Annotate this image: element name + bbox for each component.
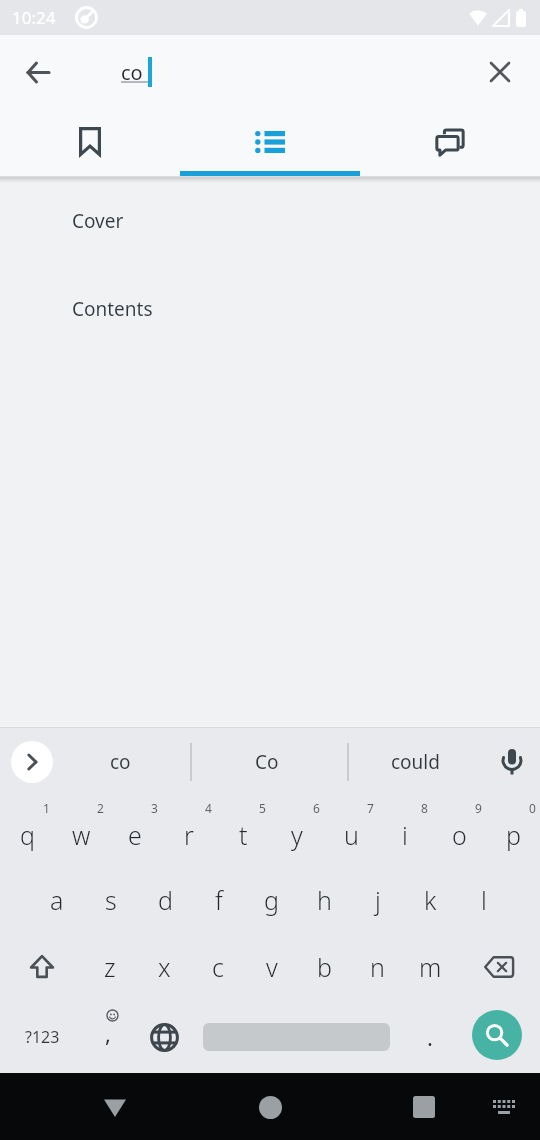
button[interactable]: x — [137, 933, 191, 1001]
staticText: b — [317, 950, 332, 984]
staticText: 6 — [313, 800, 320, 816]
button[interactable]: h — [298, 866, 351, 933]
button[interactable]: l — [457, 866, 510, 933]
staticText: y — [291, 818, 303, 852]
button[interactable]: Co — [192, 732, 342, 792]
staticText: e — [128, 818, 142, 852]
button[interactable] — [478, 50, 522, 94]
button[interactable]: Contents — [0, 265, 540, 353]
button[interactable] — [457, 933, 540, 1001]
button[interactable]: q — [0, 796, 54, 866]
staticText: i — [402, 818, 408, 852]
staticText: n — [370, 950, 385, 984]
staticText: 4 — [205, 800, 212, 816]
staticText: 8 — [421, 800, 428, 816]
staticText: , — [105, 1018, 111, 1048]
staticText: 7 — [367, 800, 374, 816]
button[interactable] — [88, 1080, 142, 1134]
staticText: h — [317, 883, 332, 917]
staticText: j — [375, 883, 381, 917]
staticText: Contents — [72, 296, 153, 322]
staticText: f — [215, 883, 223, 917]
button[interactable]: , — [84, 1007, 136, 1067]
staticText: w — [72, 818, 91, 852]
button[interactable] — [0, 933, 83, 1001]
button[interactable]: r — [162, 796, 216, 866]
staticText: 3 — [151, 800, 158, 816]
button[interactable]: a — [30, 866, 84, 933]
button[interactable] — [472, 1010, 522, 1060]
button[interactable]: b — [298, 933, 351, 1001]
button[interactable]: n — [351, 933, 404, 1001]
staticText: g — [264, 883, 279, 917]
button[interactable]: y — [270, 796, 324, 866]
staticText: could — [391, 749, 440, 775]
staticText: 10:24 — [12, 6, 56, 29]
staticText: s — [105, 883, 117, 917]
staticText: Cover — [72, 208, 124, 234]
staticText: . — [427, 1022, 433, 1052]
button[interactable]: e — [108, 796, 162, 866]
staticText: k — [424, 883, 437, 917]
button[interactable]: could — [349, 732, 481, 792]
button[interactable]: t — [216, 796, 270, 866]
staticText: o — [452, 818, 467, 852]
staticText: m — [419, 950, 442, 984]
staticText: d — [158, 883, 173, 917]
button[interactable]: w — [54, 796, 108, 866]
button[interactable]: i — [378, 796, 432, 866]
button[interactable] — [180, 108, 360, 171]
button[interactable]: v — [245, 933, 298, 1001]
button[interactable] — [482, 1085, 526, 1129]
button[interactable]: g — [245, 866, 298, 933]
button[interactable]: Cover — [0, 177, 540, 265]
button[interactable]: z — [83, 933, 137, 1001]
button[interactable] — [16, 50, 60, 94]
button[interactable]: p — [486, 796, 540, 866]
button[interactable]: j — [351, 866, 404, 933]
button[interactable]: c — [191, 933, 245, 1001]
button[interactable]: ?123 — [10, 1007, 74, 1067]
staticText: v — [266, 950, 278, 984]
staticText: Co — [255, 749, 279, 775]
button[interactable] — [360, 108, 540, 171]
button[interactable]: f — [192, 866, 245, 933]
button[interactable] — [11, 741, 53, 783]
staticText: 0 — [529, 800, 536, 816]
staticText: co — [121, 59, 143, 86]
staticText: 5 — [259, 800, 266, 816]
staticText: 9 — [475, 800, 482, 816]
staticText: u — [344, 818, 359, 852]
button[interactable] — [0, 108, 180, 171]
button[interactable]: co — [60, 732, 180, 792]
button[interactable] — [397, 1080, 451, 1134]
staticText: q — [20, 818, 35, 852]
button[interactable]: d — [138, 866, 192, 933]
staticText: ?123 — [25, 1026, 60, 1048]
staticText: p — [506, 818, 521, 852]
staticText: t — [239, 818, 248, 852]
button[interactable] — [243, 1080, 297, 1134]
button[interactable]: o — [432, 796, 486, 866]
staticText: r — [184, 818, 194, 852]
button[interactable] — [495, 745, 529, 779]
staticText: 2 — [97, 800, 104, 816]
staticText: l — [481, 883, 487, 917]
staticText: a — [50, 883, 64, 917]
staticText: co — [110, 749, 131, 775]
button[interactable]: . — [406, 1007, 454, 1067]
staticText: 1 — [43, 800, 50, 816]
button[interactable]: s — [84, 866, 138, 933]
button[interactable] — [138, 1007, 190, 1067]
button[interactable]: k — [404, 866, 457, 933]
staticText: c — [212, 950, 224, 984]
staticText: x — [158, 950, 171, 984]
button[interactable]: m — [404, 933, 457, 1001]
staticText: z — [104, 950, 116, 984]
button[interactable]: u — [324, 796, 378, 866]
